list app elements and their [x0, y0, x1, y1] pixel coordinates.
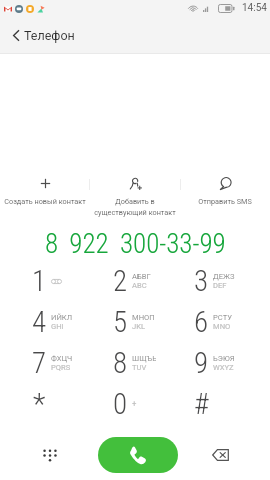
staticText: Добавить в существующий контакт — [94, 197, 176, 217]
button[interactable]: 2 — [94, 260, 175, 301]
button[interactable]: 9 — [175, 342, 256, 383]
button[interactable]: 0 — [94, 383, 175, 424]
staticText: WXYZ — [213, 363, 234, 372]
staticText: 3 — [194, 264, 209, 298]
button[interactable]: Отправить SMS — [180, 168, 270, 223]
staticText: ШЩЪЫ — [132, 354, 156, 363]
button[interactable]: 7 — [13, 342, 94, 383]
staticText: 8 — [113, 346, 128, 380]
staticText: МНОП — [132, 313, 155, 322]
staticText: 0 — [113, 387, 128, 421]
staticText: 5 — [113, 305, 128, 339]
staticText: * — [33, 387, 46, 421]
staticText: 1 — [32, 264, 47, 298]
button[interactable]: Show dialpad — [30, 435, 70, 475]
button[interactable]: Call — [98, 437, 178, 473]
staticText: MNO — [213, 322, 231, 331]
staticText: 4 — [32, 305, 47, 339]
staticText: # — [194, 387, 209, 421]
button[interactable]: 3 — [175, 260, 256, 301]
staticText: 8 922 300-33-99 — [45, 228, 226, 258]
staticText: 14:54 — [242, 2, 267, 14]
button[interactable]: Создать новый контакт — [0, 168, 90, 223]
staticText: 2 — [113, 264, 128, 298]
button[interactable]: 4 — [13, 301, 94, 342]
staticText: DEF — [213, 281, 227, 290]
button[interactable]: 6 — [175, 301, 256, 342]
staticText: TUV — [132, 363, 147, 372]
staticText: JKL — [132, 322, 146, 331]
button[interactable]: # — [175, 383, 256, 424]
button[interactable]: Добавить в существующий контакт — [90, 168, 180, 223]
staticText: 6 — [194, 305, 209, 339]
button[interactable]: 5 — [94, 301, 175, 342]
staticText: 9 — [194, 346, 209, 380]
staticText: Создать новый контакт — [4, 197, 86, 206]
button[interactable]: * — [13, 383, 94, 424]
staticText: ABC — [132, 281, 147, 290]
staticText: + — [132, 399, 137, 410]
staticText: GHI — [51, 322, 64, 331]
button[interactable]: Телефон — [0, 20, 87, 51]
staticText: ИЙКЛ — [51, 313, 73, 322]
staticText: ФХЦЧ — [51, 354, 73, 363]
staticText: Отправить SMS — [198, 197, 252, 206]
staticText: 7 — [32, 346, 47, 380]
button[interactable]: 8 — [94, 342, 175, 383]
staticText: ДЕЖЗ — [213, 272, 235, 281]
staticText: АБВГ — [132, 272, 151, 281]
staticText: РСТУ — [213, 313, 232, 322]
button[interactable]: Backspace — [200, 435, 240, 475]
button[interactable]: 1 — [13, 260, 94, 301]
staticText: ЬЭЮЯ — [213, 354, 235, 363]
staticText: Телефон — [24, 28, 75, 43]
staticText: PQRS — [51, 363, 71, 372]
